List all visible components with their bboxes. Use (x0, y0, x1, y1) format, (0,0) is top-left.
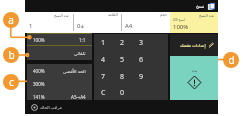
button[interactable]: 1 (94, 34, 113, 51)
staticText: 4 (101, 55, 106, 65)
other: Edit (208, 42, 215, 49)
button[interactable]: 4 (94, 51, 113, 68)
button[interactable]: عدد النسخ (170, 12, 218, 33)
button[interactable]: 3 (132, 34, 151, 51)
staticText: عدد النسخ (54, 13, 70, 18)
staticText: (20 نسخ) (173, 18, 186, 22)
button[interactable]: بدء (170, 56, 218, 100)
staticText: 8 (120, 72, 125, 82)
button[interactable]: 7 (94, 68, 113, 85)
staticText: 9 (139, 72, 144, 82)
staticText: حجم (160, 13, 167, 17)
staticText: b (8, 48, 15, 62)
staticText: تلقائي (74, 51, 86, 56)
button[interactable]: 9 (132, 68, 151, 85)
button[interactable]: عدد النسخ (25, 12, 73, 33)
staticText: 7 (101, 72, 106, 82)
staticText: 2 (120, 38, 125, 48)
staticText: 100% (173, 23, 189, 31)
staticText: A4 (125, 22, 133, 30)
staticText: 300% (33, 81, 45, 87)
button[interactable]: حجم (121, 12, 170, 33)
button[interactable]: 100% (27, 33, 92, 46)
staticText: 400% (33, 68, 45, 74)
staticText: 0± (77, 22, 84, 30)
staticText: a (8, 13, 14, 27)
staticText: الحد الأقصى (63, 68, 86, 74)
staticText: C (101, 88, 106, 98)
staticText: عدد النسخ (199, 13, 215, 18)
staticText: 1 (101, 38, 106, 48)
staticText: d (228, 53, 235, 67)
staticText: إعدادات مفضلة (180, 43, 206, 48)
staticText: الكثافة (108, 13, 118, 17)
staticText: 100% (33, 37, 45, 43)
button[interactable]: 400% (27, 64, 92, 77)
button[interactable]: الكثافة (73, 12, 121, 33)
staticText: 1:1 (79, 37, 86, 43)
other: Copy (207, 2, 216, 11)
button[interactable]: 300% (27, 77, 92, 90)
button[interactable]: C (94, 85, 113, 100)
staticText: 0 (120, 88, 125, 98)
staticText: نسخ (196, 4, 205, 9)
button[interactable]: 2 (113, 34, 132, 51)
staticText: 5 (120, 55, 125, 65)
staticText: مراقب الحالة (40, 105, 62, 110)
button[interactable]: 0 (113, 85, 132, 100)
staticText: A5→A4 (71, 94, 86, 100)
button[interactable]: إعدادات مفضلة (170, 34, 218, 56)
button[interactable]: نسخ (25, 0, 218, 12)
staticText: c (9, 75, 14, 89)
button[interactable]: 8 (113, 68, 132, 85)
button[interactable]: 141% (27, 90, 92, 103)
button[interactable]: 5 (113, 51, 132, 68)
staticText: 6 (139, 55, 144, 65)
staticText: بدء (192, 68, 198, 73)
staticText: 141% (33, 94, 45, 100)
button[interactable]: 6 (132, 51, 151, 68)
other: Status monitor (31, 104, 38, 111)
button[interactable]: تلقائي (27, 46, 92, 60)
button[interactable]: Status monitor (25, 100, 218, 114)
staticText: 3 (139, 38, 144, 48)
staticText: 1 (29, 22, 33, 30)
